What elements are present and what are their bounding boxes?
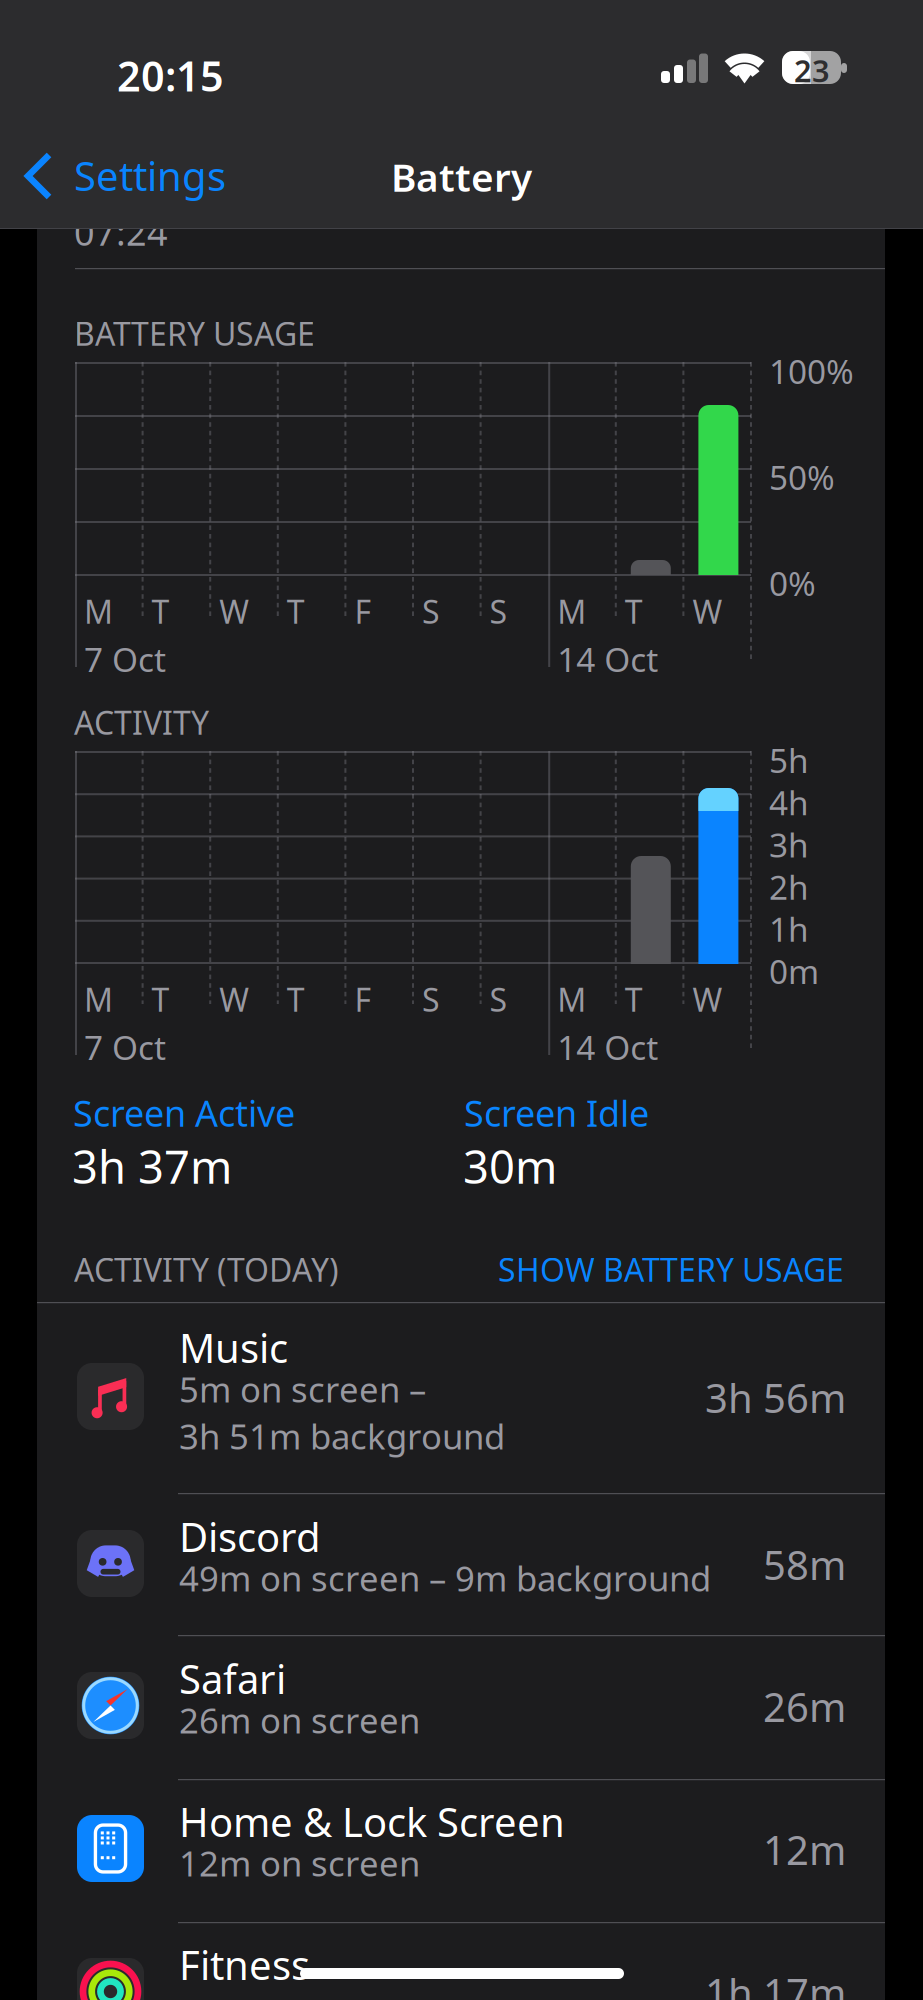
- staticText: ACTIVITY: [74, 701, 209, 743]
- staticText: 5h: [769, 738, 809, 782]
- staticText: 100%: [769, 349, 854, 393]
- staticText: Settings: [74, 149, 226, 202]
- staticText: Fitness: [179, 1938, 310, 1991]
- staticText: 4h: [769, 780, 809, 824]
- staticText: S: [490, 590, 508, 632]
- staticText: W: [692, 978, 722, 1020]
- staticText: 3h 56m: [705, 1371, 846, 1424]
- button[interactable]: Music: [0, 0, 848, 191]
- staticText: 26m on screen: [179, 1697, 420, 1743]
- staticText: 2h: [769, 865, 809, 909]
- staticText: 12m: [763, 1823, 846, 1876]
- button[interactable]: Discord: [0, 0, 848, 141]
- staticText: M: [557, 978, 586, 1020]
- staticText: 14 Oct: [557, 1025, 658, 1069]
- staticText: 26m: [763, 1680, 846, 1733]
- staticText: ACTIVITY (TODAY): [74, 1248, 339, 1290]
- staticText: 0m: [769, 949, 819, 993]
- staticText: S: [422, 978, 440, 1020]
- staticText: 30m: [463, 1136, 557, 1196]
- staticText: F: [354, 590, 371, 632]
- staticText: 14 Oct: [557, 637, 658, 681]
- staticText: T: [152, 590, 170, 632]
- staticText: M: [84, 590, 113, 632]
- staticText: 1h: [769, 907, 809, 951]
- staticText: 5m on screen –: [179, 1366, 426, 1412]
- staticText: SHOW BATTERY USAGE: [498, 1248, 844, 1290]
- staticText: 3h: [769, 822, 809, 867]
- staticText: 49m on screen – 9m background: [179, 1555, 711, 1601]
- button[interactable]: Fitness: [0, 0, 848, 62]
- staticText: 0%: [769, 561, 816, 605]
- staticText: 07:24: [74, 208, 168, 256]
- staticText: 12m on screen: [179, 1840, 420, 1886]
- staticText: F: [354, 978, 371, 1020]
- button[interactable]: Home & Lock Screen: [0, 0, 848, 143]
- staticText: Music: [179, 1321, 288, 1374]
- staticText: T: [152, 978, 170, 1020]
- staticText: W: [692, 590, 722, 632]
- staticText: Home & Lock Screen: [179, 1795, 565, 1848]
- button[interactable]: Safari: [0, 0, 848, 144]
- staticText: 58m: [763, 1538, 846, 1591]
- staticText: Safari: [179, 1652, 286, 1705]
- staticText: 3h 37m: [72, 1136, 232, 1196]
- staticText: Discord: [179, 1510, 321, 1563]
- staticText: Battery: [391, 151, 532, 202]
- staticText: Screen Idle: [464, 1089, 649, 1137]
- staticText: BATTERY USAGE: [74, 312, 315, 354]
- staticText: 50%: [769, 455, 835, 499]
- staticText: 1h 17m: [705, 1966, 846, 2000]
- staticText: T: [625, 978, 643, 1020]
- staticText: M: [557, 590, 586, 632]
- staticText: T: [287, 978, 305, 1020]
- button[interactable]: SHOW BATTERY USAGE: [494, 1248, 844, 1290]
- staticText: T: [625, 590, 643, 632]
- button[interactable]: Settings: [22, 149, 232, 207]
- staticText: M: [84, 978, 113, 1020]
- staticText: 7 Oct: [84, 1025, 166, 1069]
- staticText: 23: [794, 50, 830, 91]
- staticText: S: [422, 590, 440, 632]
- staticText: 20:15: [117, 48, 224, 103]
- staticText: T: [287, 590, 305, 632]
- staticText: W: [219, 978, 249, 1020]
- staticText: W: [219, 590, 249, 632]
- staticText: S: [490, 978, 508, 1020]
- staticText: 7 Oct: [84, 637, 166, 681]
- staticText: 3h 51m background: [179, 1413, 505, 1459]
- staticText: Screen Active: [73, 1089, 295, 1137]
